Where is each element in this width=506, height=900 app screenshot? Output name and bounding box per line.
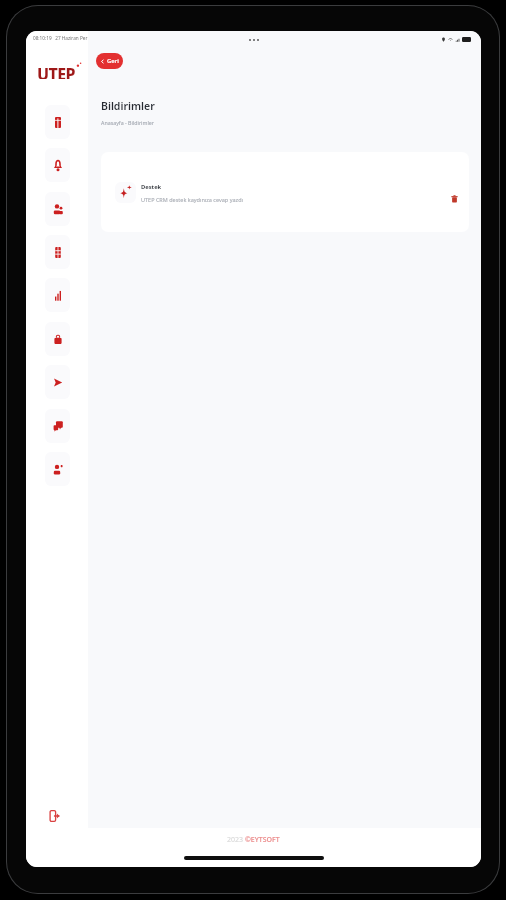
staticText: UTEP bbox=[37, 63, 75, 79]
button[interactable]: Geri bbox=[96, 53, 123, 69]
staticText: 08:10:19 27 Haziran Per bbox=[33, 35, 88, 41]
staticText: Bildirimler bbox=[101, 99, 155, 113]
button[interactable]: Destek bbox=[101, 152, 469, 232]
button[interactable]: Sil bbox=[447, 192, 461, 206]
button[interactable]: Bildirimler bbox=[45, 148, 70, 182]
button[interactable]: Gorevler bbox=[45, 235, 70, 269]
button[interactable]: Anasayfa bbox=[45, 105, 70, 139]
button[interactable]: Cikis Yap bbox=[41, 803, 67, 829]
button[interactable]: Teklifler bbox=[45, 322, 70, 356]
staticText: ©EYTSOFT bbox=[245, 835, 280, 845]
button[interactable]: Musteriler bbox=[45, 192, 70, 226]
staticText: Geri bbox=[107, 57, 119, 65]
button[interactable]: Mesajlar bbox=[45, 409, 70, 443]
button[interactable]: Kullanicilar bbox=[45, 452, 70, 486]
staticText: Anasayfa - Bildirimler bbox=[101, 119, 154, 126]
staticText: UTEP CRM destek kaydınıza cevap yazdı bbox=[141, 196, 243, 203]
button[interactable]: Gonderilenler bbox=[45, 365, 70, 399]
staticText: 2023 bbox=[227, 835, 245, 845]
button[interactable]: Raporlar bbox=[45, 278, 70, 312]
staticText: Destek bbox=[141, 183, 162, 191]
